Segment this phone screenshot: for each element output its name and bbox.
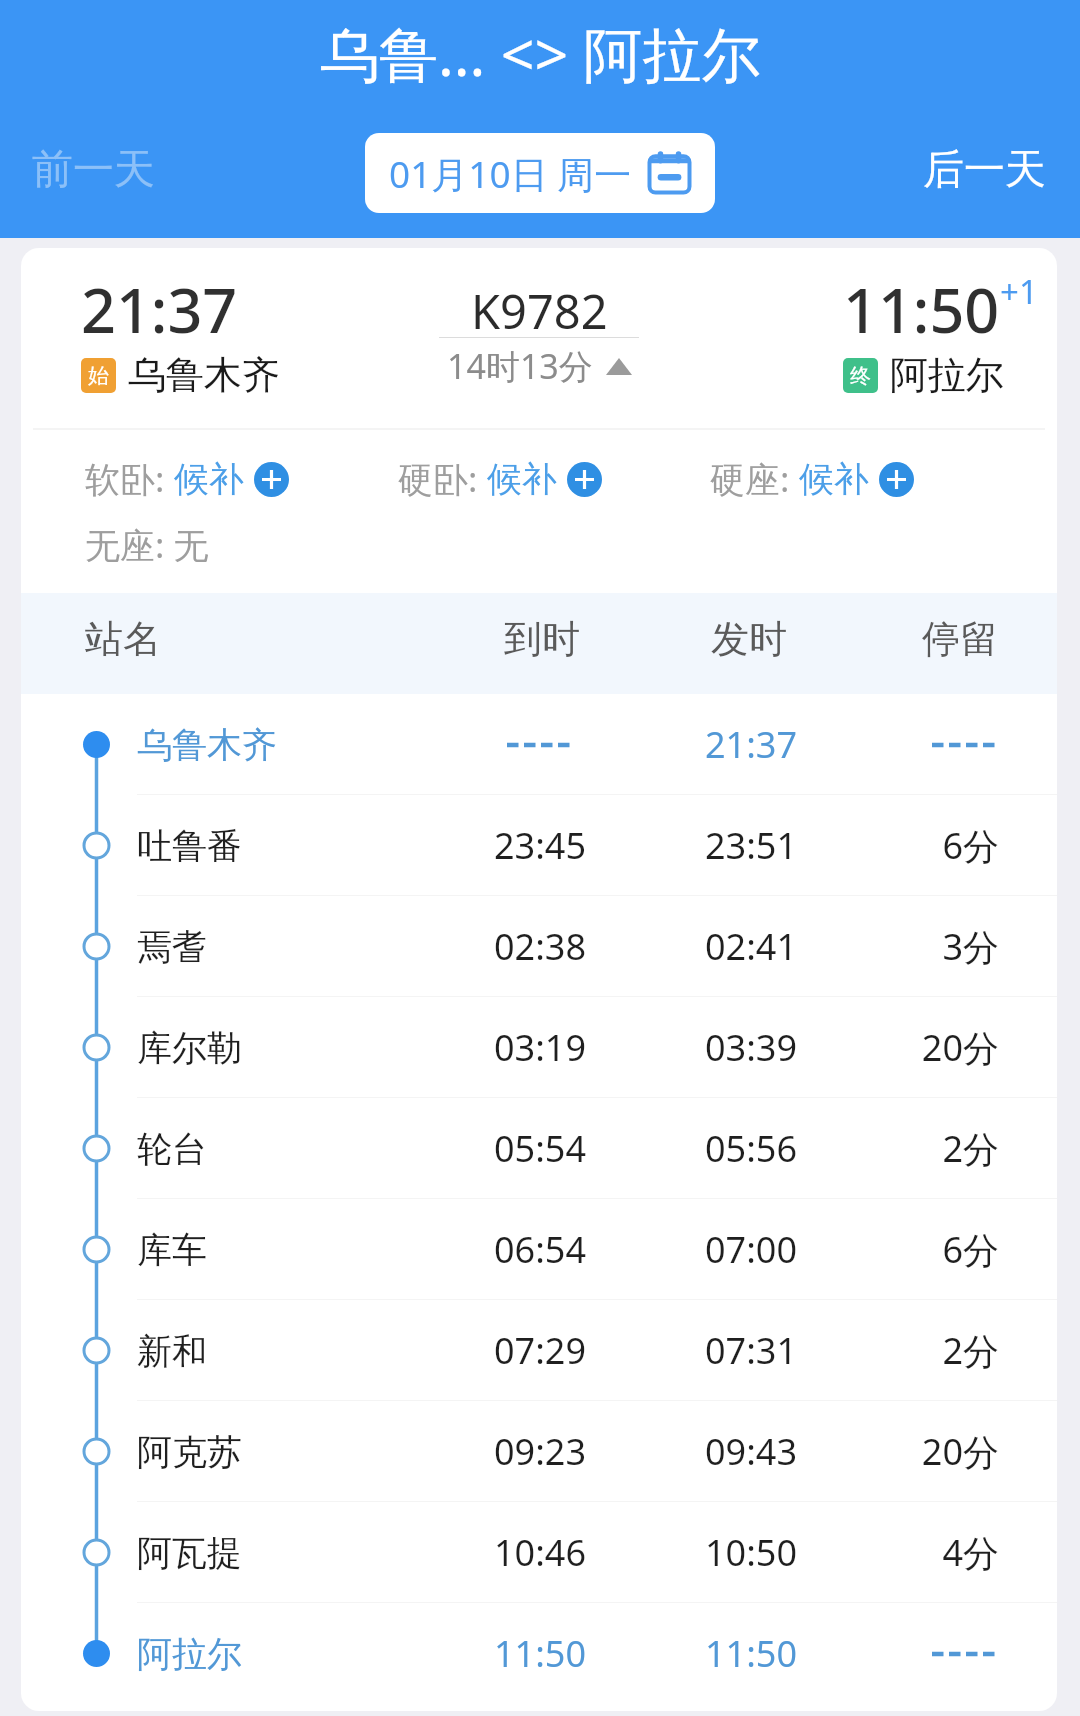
staticText: 无座: 无 — [85, 521, 209, 569]
button[interactable]: 软卧: — [85, 455, 289, 503]
staticText: 阿瓦提 — [137, 1531, 242, 1575]
staticText: 06:54 — [440, 1225, 640, 1274]
staticText: 焉耆 — [137, 925, 207, 969]
staticText: 站名 — [85, 615, 161, 663]
staticText: 候补 — [487, 457, 557, 501]
staticText: 乌鲁木齐 — [128, 351, 280, 399]
staticText: 07:00 — [651, 1225, 851, 1274]
button[interactable]: 阿拉尔 — [21, 1603, 1057, 1704]
staticText: 23:51 — [651, 821, 851, 870]
staticText: 11:50 — [440, 1629, 640, 1678]
staticText: 乌鲁木齐 — [137, 723, 277, 767]
staticText: 20分 — [799, 1427, 999, 1476]
staticText: 02:41 — [651, 922, 851, 971]
staticText: 03:19 — [440, 1023, 640, 1072]
button[interactable]: 库尔勒 — [21, 997, 1057, 1098]
staticText: 02:38 — [440, 922, 640, 971]
staticText: K9782 — [471, 279, 608, 343]
staticText: 03:39 — [651, 1023, 851, 1072]
staticText: 14时13分 — [447, 343, 593, 389]
staticText: 09:23 — [440, 1427, 640, 1476]
staticText: 后一天 — [923, 144, 1046, 196]
staticText: 阿拉尔 — [137, 1632, 242, 1676]
staticText: 新和 — [137, 1329, 207, 1373]
staticText: 轮台 — [137, 1127, 207, 1171]
staticText: 硬座: — [710, 455, 799, 503]
button[interactable]: 前一天 — [20, 138, 167, 202]
staticText: 6分 — [799, 1225, 999, 1274]
staticText: 停留 — [922, 615, 998, 663]
staticText: 2分 — [799, 1326, 999, 1375]
staticText: 21:37 — [651, 720, 851, 769]
staticText: 10:46 — [440, 1528, 640, 1577]
button[interactable]: 库车 — [21, 1199, 1057, 1300]
staticText: 10:50 — [651, 1528, 851, 1577]
staticText: 候补 — [174, 457, 244, 501]
staticText: 01月10日 周一 — [389, 148, 632, 199]
staticText: 阿拉尔 — [890, 351, 1004, 399]
staticText: 4分 — [799, 1528, 999, 1577]
staticText: 乌鲁... <> 阿拉尔 — [320, 13, 761, 94]
staticText: 库车 — [137, 1228, 207, 1272]
button[interactable]: 硬座: — [710, 455, 914, 503]
button[interactable]: 后一天 — [911, 138, 1058, 202]
staticText: 11:50 — [843, 268, 1000, 351]
button[interactable]: 吐鲁番 — [21, 795, 1057, 896]
button[interactable]: 01月10日 周一 — [365, 133, 715, 213]
staticText: 2分 — [799, 1124, 999, 1173]
staticText: 到时 — [504, 615, 580, 663]
staticText: 终 — [850, 363, 871, 389]
staticText: 库尔勒 — [137, 1026, 242, 1070]
button[interactable]: 阿瓦提 — [21, 1502, 1057, 1603]
button[interactable]: 焉耆 — [21, 896, 1057, 997]
staticText: 硬卧: — [398, 455, 487, 503]
button[interactable]: 轮台 — [21, 1098, 1057, 1199]
staticText: +1 — [1000, 269, 1038, 314]
staticText: 软卧: — [85, 455, 174, 503]
staticText: 07:29 — [440, 1326, 640, 1375]
button[interactable]: 乌鲁木齐 — [21, 694, 1057, 795]
staticText: 20分 — [799, 1023, 999, 1072]
staticText: 发时 — [711, 615, 787, 663]
staticText: 07:31 — [651, 1326, 851, 1375]
button[interactable]: 阿克苏 — [21, 1401, 1057, 1502]
staticText: 23:45 — [440, 821, 640, 870]
staticText: 吐鲁番 — [137, 824, 242, 868]
staticText: 始 — [88, 363, 109, 389]
staticText: 阿克苏 — [137, 1430, 242, 1474]
staticText: 前一天 — [32, 144, 155, 196]
other: Select date — [648, 152, 691, 194]
staticText: 09:43 — [651, 1427, 851, 1476]
staticText: 05:54 — [440, 1124, 640, 1173]
staticText: 11:50 — [651, 1629, 851, 1678]
staticText: 21:37 — [81, 268, 238, 351]
button[interactable]: 硬卧: — [398, 455, 602, 503]
staticText: 候补 — [799, 457, 869, 501]
staticText: 05:56 — [651, 1124, 851, 1173]
staticText: 3分 — [799, 922, 999, 971]
staticText: 6分 — [799, 821, 999, 870]
button[interactable]: 新和 — [21, 1300, 1057, 1401]
